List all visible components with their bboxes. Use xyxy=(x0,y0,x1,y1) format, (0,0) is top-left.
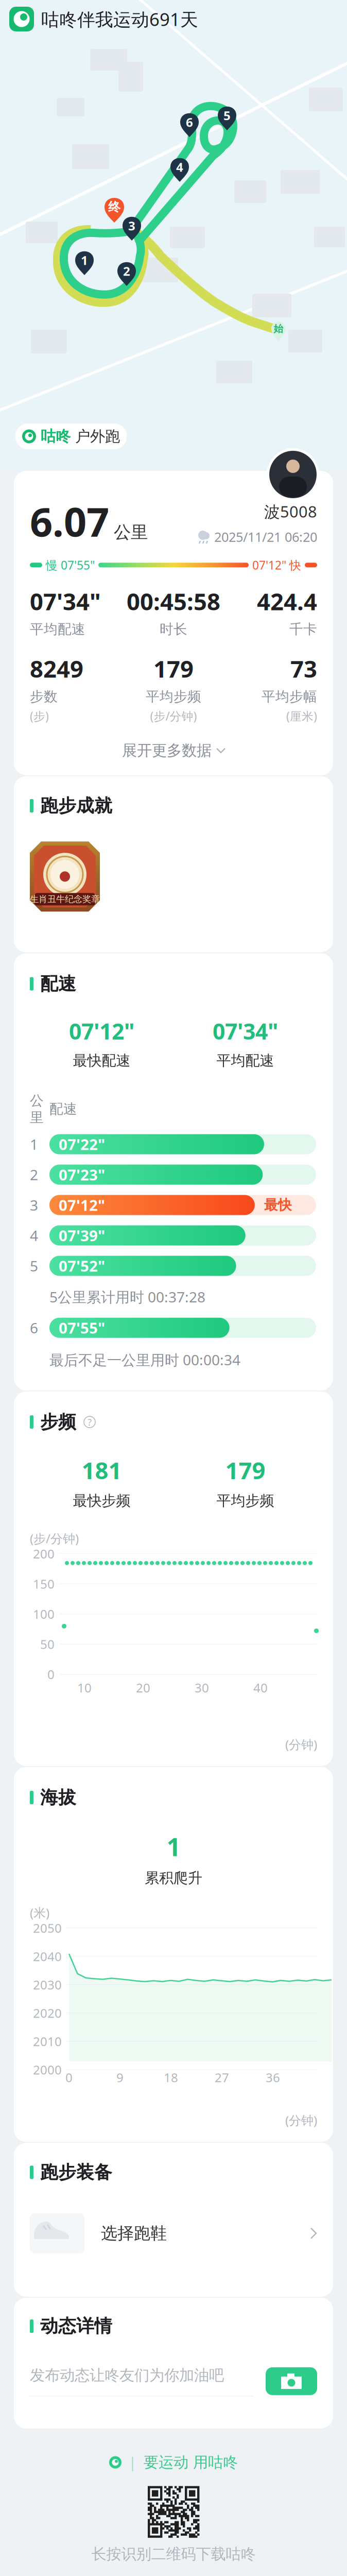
staticText: 2040 xyxy=(33,1948,62,1965)
staticText: 07'34" xyxy=(213,1016,278,1046)
staticText: 累积爬升 xyxy=(145,1869,202,1887)
staticText: 咕咚 xyxy=(41,427,71,446)
staticText: 配速 xyxy=(49,1101,77,1118)
staticText: (厘米) xyxy=(286,708,317,724)
button[interactable]: 选择跑鞋 xyxy=(30,2183,317,2297)
staticText: 07'39" xyxy=(59,1225,105,1245)
staticText: 07'12" xyxy=(69,1016,134,1046)
staticText: 4 xyxy=(30,1226,38,1245)
staticText: 步数 xyxy=(30,688,58,705)
staticText: 步频 xyxy=(40,1411,76,1433)
staticText: 8249 xyxy=(30,653,83,684)
staticText: 100 xyxy=(33,1606,55,1622)
staticText: 慢 07'55" xyxy=(46,557,95,573)
staticText: 6.07 xyxy=(30,495,109,548)
staticText: 展开更多数据 xyxy=(122,741,212,760)
staticText: 2 xyxy=(123,263,130,279)
staticText: 最后不足一公里用时 00:00:34 xyxy=(49,1350,240,1369)
staticText: 平均配速 xyxy=(216,1052,274,1070)
staticText: 咕咚伴我运动691天 xyxy=(41,7,198,31)
staticText: 海拔 xyxy=(40,1787,76,1809)
staticText: 动态详情 xyxy=(40,2315,112,2337)
staticText: 配速 xyxy=(40,973,76,995)
staticText: 最快 xyxy=(264,1197,292,1214)
staticText: 1 xyxy=(30,1135,38,1154)
staticText: (步/分钟) xyxy=(30,1530,79,1547)
staticText: 6 xyxy=(186,114,193,130)
staticText: 30 xyxy=(195,1680,209,1696)
staticText: 2 xyxy=(30,1165,38,1184)
staticText: 179 xyxy=(153,653,194,684)
staticText: 36 xyxy=(266,2069,280,2086)
staticText: 公里 xyxy=(114,522,148,543)
staticText: 终 xyxy=(108,200,120,215)
staticText: ? xyxy=(88,1416,92,1428)
staticText: 27 xyxy=(215,2069,229,2086)
staticText: 50 xyxy=(40,1636,55,1652)
staticText: 平均步频 xyxy=(216,1492,274,1510)
staticText: 07'55" xyxy=(59,1318,105,1338)
staticText: 公里 xyxy=(30,1092,44,1126)
staticText: 18 xyxy=(164,2069,178,2086)
staticText: 长按识别二维码下载咕咚 xyxy=(91,2545,256,2563)
staticText: 181 xyxy=(82,1455,122,1486)
staticText: 10 xyxy=(77,1680,92,1696)
staticText: (分钟) xyxy=(285,2112,317,2128)
staticText: 3 xyxy=(30,1195,38,1215)
staticText: 07'12" 快 xyxy=(252,557,301,573)
staticText: 20 xyxy=(136,1680,150,1696)
staticText: 2030 xyxy=(33,1976,62,1993)
staticText: 3 xyxy=(128,217,135,234)
staticText: 0 xyxy=(47,1666,55,1683)
staticText: 4 xyxy=(176,159,183,175)
staticText: 6 xyxy=(30,1318,38,1337)
staticText: (步/分钟) xyxy=(150,708,197,724)
staticText: (步) xyxy=(30,708,49,724)
staticText: 户外跑 xyxy=(75,427,120,446)
staticText: 2025/11/21 06:20 xyxy=(214,528,317,545)
staticText: 波5008 xyxy=(264,501,317,522)
staticText: 1 xyxy=(81,252,88,268)
button[interactable]: Add photo xyxy=(266,2367,317,2395)
staticText: | xyxy=(129,2453,136,2471)
staticText: 选择跑鞋 xyxy=(101,2223,167,2243)
staticText: 最快配速 xyxy=(73,1052,131,1070)
staticText: 最快步频 xyxy=(73,1492,131,1510)
staticText: 始 xyxy=(274,323,283,335)
staticText: 时长 xyxy=(160,621,187,638)
staticText: 平均配速 xyxy=(30,621,85,638)
staticText: 9 xyxy=(116,2069,124,2086)
staticText: 179 xyxy=(225,1455,265,1486)
staticText: (米) xyxy=(30,1904,49,1921)
staticText: 07'12" xyxy=(59,1195,105,1215)
staticText: 40 xyxy=(253,1680,268,1696)
staticText: 200 xyxy=(33,1546,55,1562)
button[interactable]: 展开更多数据 xyxy=(30,724,317,775)
staticText: 5 xyxy=(223,107,231,124)
staticText: 跑步装备 xyxy=(40,2161,112,2183)
staticText: 生肖丑牛纪念奖章 xyxy=(30,894,100,905)
staticText: 2000 xyxy=(33,2061,62,2078)
staticText: 07'22" xyxy=(59,1134,105,1154)
staticText: 2010 xyxy=(33,2033,62,2050)
staticText: 07'23" xyxy=(59,1165,105,1185)
staticText: 00:45:58 xyxy=(127,586,220,617)
button[interactable]: 生肖丑牛纪念奖章 xyxy=(30,817,100,952)
staticText: 平均步频 xyxy=(146,688,201,705)
staticText: 07'34" xyxy=(30,586,101,617)
staticText: 5公里累计用时 00:37:28 xyxy=(49,1287,205,1306)
staticText: 0 xyxy=(65,2069,73,2086)
staticText: 要运动 用咕咚 xyxy=(144,2453,238,2472)
staticText: 千卡 xyxy=(289,621,317,638)
staticText: 424.4 xyxy=(257,586,317,617)
staticText: 5 xyxy=(30,1256,38,1275)
staticText: 07'52" xyxy=(59,1256,105,1276)
staticText: 1 xyxy=(167,1830,180,1863)
staticText: 150 xyxy=(33,1576,55,1592)
staticText: 平均步幅 xyxy=(262,688,317,705)
staticText: 2050 xyxy=(33,1920,62,1936)
staticText: 跑步成就 xyxy=(40,795,112,817)
staticText: 73 xyxy=(290,653,317,684)
staticText: 2020 xyxy=(33,2005,62,2021)
staticText: 发布动态让咚友们为你加油吧 xyxy=(30,2366,224,2385)
